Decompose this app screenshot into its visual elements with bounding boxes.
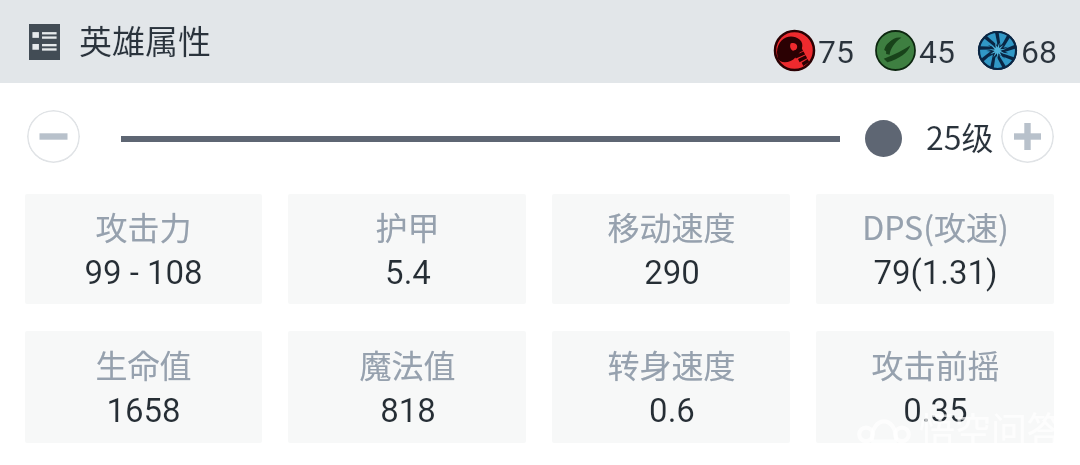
- staticText: 99 - 108: [84, 253, 203, 292]
- button[interactable]: Increase level: [1001, 110, 1054, 163]
- staticText: 生命值: [95, 341, 192, 387]
- staticText: 悟空问答: [919, 402, 1064, 454]
- button[interactable]: 移动速度: [552, 194, 790, 304]
- button[interactable]: Level slider: [865, 120, 902, 157]
- button[interactable]: 护甲: [288, 194, 526, 304]
- button[interactable]: DPS(攻速): [816, 194, 1054, 304]
- staticText: 75: [818, 33, 854, 71]
- staticText: 0.35: [903, 391, 968, 430]
- staticText: 护甲: [375, 203, 440, 249]
- button[interactable]: Attribute 68: [978, 26, 1057, 65]
- staticText: 英雄属性: [79, 16, 211, 64]
- staticText: 攻击前摇: [871, 341, 1000, 387]
- button[interactable]: 魔法值: [288, 331, 526, 443]
- button[interactable]: 转身速度: [552, 331, 790, 443]
- staticText: 1658: [106, 391, 181, 430]
- button[interactable]: Attribute 75: [775, 26, 854, 65]
- button[interactable]: Decrease level: [27, 110, 80, 163]
- staticText: 45: [919, 33, 955, 71]
- staticText: 魔法值: [359, 341, 456, 387]
- button[interactable]: 攻击前摇: [816, 331, 1054, 443]
- button[interactable]: Attribute 45: [876, 26, 955, 65]
- button[interactable]: Attributes list: [29, 24, 60, 60]
- staticText: 818: [380, 391, 436, 430]
- staticText: DPS(攻速): [862, 203, 1009, 249]
- staticText: 移动速度: [607, 203, 736, 249]
- staticText: 290: [644, 253, 700, 292]
- staticText: 5.4: [385, 253, 431, 292]
- staticText: 攻击力: [95, 203, 192, 249]
- button[interactable]: 攻击力: [25, 194, 262, 304]
- button[interactable]: 生命值: [25, 331, 262, 443]
- staticText: 0.6: [649, 391, 695, 430]
- staticText: 79(1.31): [873, 253, 998, 292]
- staticText: 转身速度: [607, 341, 736, 387]
- staticText: 25级: [926, 113, 994, 159]
- staticText: 68: [1021, 33, 1057, 71]
